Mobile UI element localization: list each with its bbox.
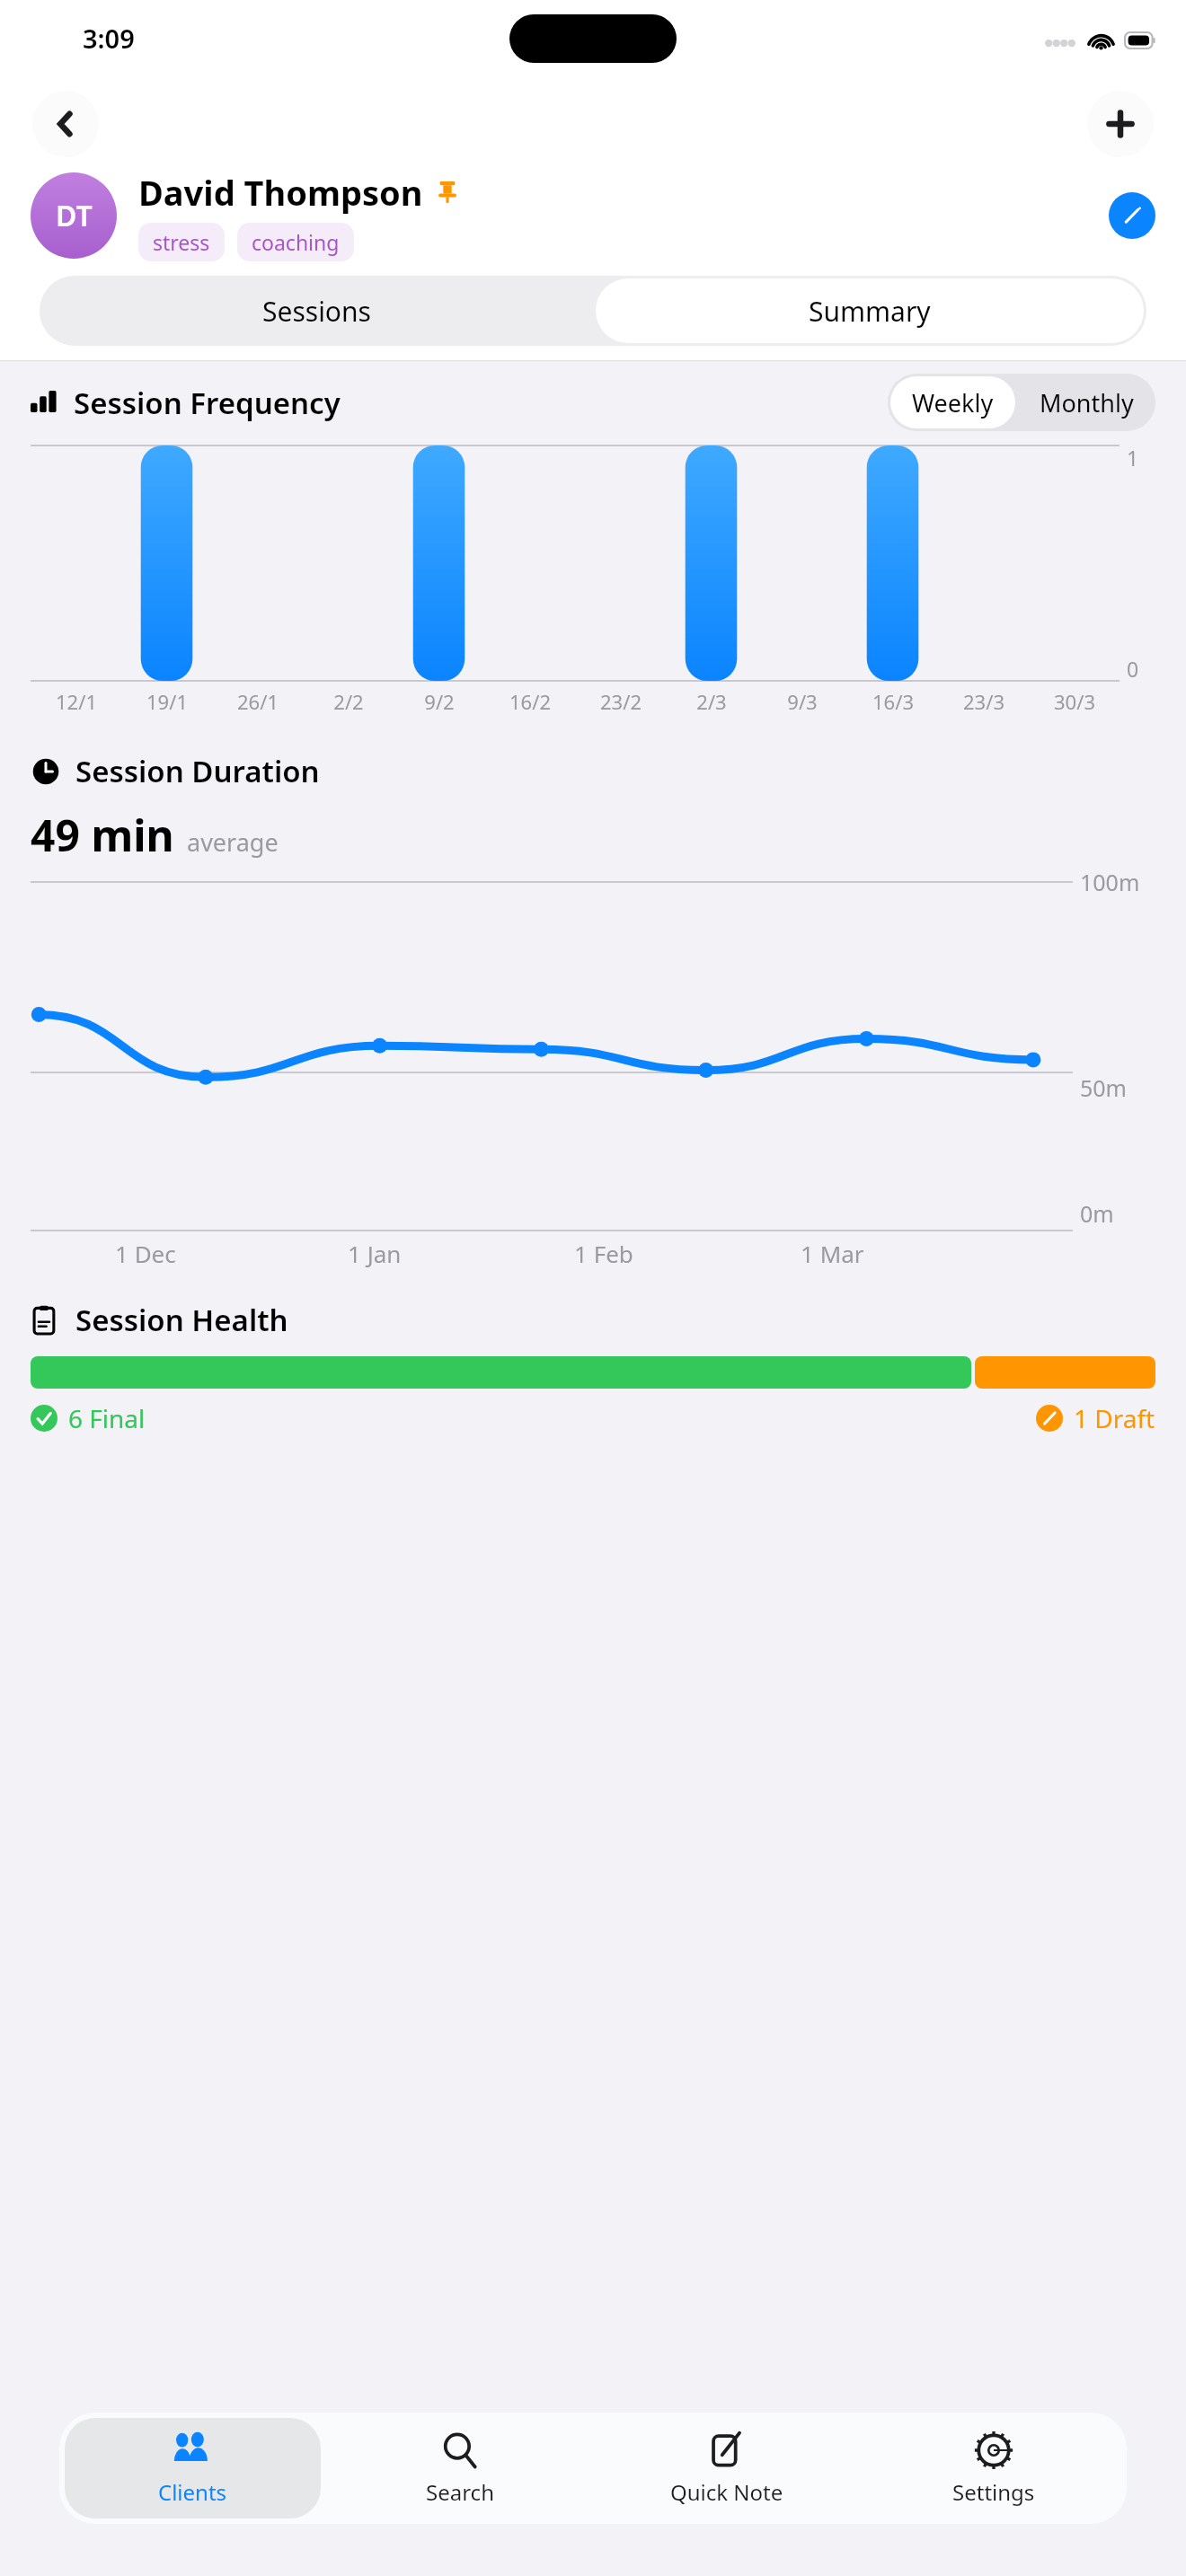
button[interactable]: Edit <box>1109 192 1155 239</box>
staticText: coaching <box>252 228 340 256</box>
staticText: 1 Draft <box>1074 1401 1155 1435</box>
staticText: 19/1 <box>146 688 188 715</box>
staticText: average <box>187 825 279 859</box>
staticText: Session Frequency <box>74 383 341 423</box>
button[interactable]: stress <box>153 228 210 256</box>
button[interactable]: Monthly <box>1040 374 1134 431</box>
staticText: Session Health <box>75 1300 288 1340</box>
staticText: Settings <box>952 2477 1035 2507</box>
button[interactable]: Quick Note <box>593 2413 860 2524</box>
staticText: 1 Jan <box>348 1238 402 1269</box>
staticText: 12/1 <box>56 688 97 715</box>
staticText: 49 min <box>31 806 174 864</box>
staticText: Monthly <box>1040 386 1134 419</box>
button[interactable]: Back <box>32 91 99 157</box>
staticText: DT <box>56 196 93 235</box>
button[interactable]: Clients <box>65 2418 321 2519</box>
staticText: 23/2 <box>600 688 642 715</box>
staticText: David Thompson <box>138 169 423 216</box>
staticText: 23/3 <box>963 688 1005 715</box>
staticText: 30/3 <box>1054 688 1095 715</box>
staticText: Search <box>426 2477 494 2507</box>
staticText: Quick Note <box>670 2477 783 2507</box>
button[interactable]: Weekly <box>912 376 994 428</box>
staticText: Session Duration <box>75 751 320 791</box>
button[interactable]: Sessions <box>40 276 593 346</box>
staticText: 26/1 <box>237 688 279 715</box>
staticText: 9/3 <box>787 688 818 715</box>
staticText: 6 Final <box>68 1401 146 1435</box>
button[interactable]: coaching <box>252 228 340 256</box>
staticText: 9/2 <box>424 688 455 715</box>
staticText: 1 Dec <box>115 1238 176 1269</box>
staticText: 16/3 <box>872 688 914 715</box>
staticText: 2/2 <box>333 688 364 715</box>
staticText: 50m <box>1080 1072 1127 1103</box>
staticText: Summary <box>809 293 931 330</box>
staticText: 1 <box>1127 444 1139 472</box>
staticText: Clients <box>158 2477 227 2507</box>
staticText: 16/2 <box>509 688 551 715</box>
staticText: 3:09 <box>83 21 135 56</box>
staticText: 2/3 <box>696 688 727 715</box>
staticText: 1 Mar <box>801 1238 864 1269</box>
staticText: 0 <box>1127 655 1139 683</box>
staticText: 0m <box>1080 1198 1114 1229</box>
staticText: Weekly <box>912 386 994 419</box>
staticText: Sessions <box>262 293 371 330</box>
staticText: 1 Feb <box>574 1238 633 1269</box>
button[interactable]: Settings <box>860 2413 1127 2524</box>
staticText: 100m <box>1080 867 1140 897</box>
button[interactable]: Search <box>326 2413 593 2524</box>
staticText: stress <box>153 228 210 256</box>
button[interactable]: Add <box>1087 91 1154 157</box>
button[interactable]: Summary <box>596 278 1144 343</box>
